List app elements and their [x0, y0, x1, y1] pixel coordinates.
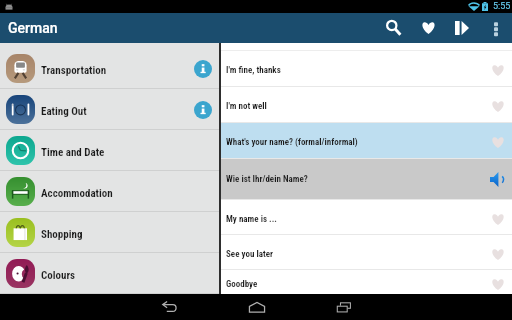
other: Favourite — [491, 214, 505, 225]
button[interactable]: Accommodation — [0, 171, 219, 211]
other: Favourite — [491, 137, 505, 148]
button[interactable]: Search — [377, 13, 411, 43]
button[interactable]: Flashcards — [445, 13, 479, 43]
staticText: Accommodation — [41, 187, 212, 200]
button[interactable]: My name is ... — [221, 200, 512, 234]
staticText: Goodbye — [226, 279, 491, 290]
button[interactable]: I'm fine, thanks — [221, 51, 512, 86]
staticText: Shopping — [41, 228, 212, 241]
button[interactable]: Back — [154, 294, 185, 320]
button[interactable]: Time and Date — [0, 130, 219, 170]
staticText: 5:55 — [493, 1, 511, 12]
staticText: Transportation — [41, 64, 194, 77]
button[interactable]: Recent apps — [328, 294, 359, 320]
button[interactable]: See you later — [221, 235, 512, 269]
staticText: Colours — [41, 269, 212, 282]
staticText: My name is ... — [226, 214, 491, 225]
button[interactable]: What's your name? (formal/informal) — [221, 123, 512, 158]
button[interactable]: I'm not well — [221, 87, 512, 122]
staticText: Eating Out — [41, 105, 194, 118]
other: Info — [194, 60, 212, 78]
button[interactable]: Transportation — [0, 48, 219, 88]
other: Favourite — [491, 249, 505, 260]
staticText: Time and Date — [41, 146, 212, 159]
staticText: I'm not well — [226, 101, 491, 112]
staticText: What's your name? (formal/informal) — [226, 137, 491, 148]
button[interactable]: Shopping — [0, 212, 219, 252]
button[interactable]: Colours — [0, 253, 219, 293]
other: Play audio — [490, 172, 505, 187]
button[interactable]: Favourites — [411, 13, 445, 43]
button[interactable]: More options — [479, 13, 512, 43]
staticText: Wie ist Ihr/dein Name? — [226, 174, 490, 185]
other: Info — [194, 101, 212, 119]
button[interactable]: Goodbye — [221, 270, 512, 294]
button[interactable]: Wie ist Ihr/dein Name? — [221, 159, 512, 199]
other: Favourite — [491, 65, 505, 76]
other: Favourite — [491, 101, 505, 112]
staticText: I'm fine, thanks — [226, 65, 491, 76]
button[interactable]: Eating Out — [0, 89, 219, 129]
staticText: German — [8, 20, 58, 36]
button[interactable]: Home — [241, 294, 272, 320]
other: Favourite — [491, 279, 505, 290]
staticText: See you later — [226, 249, 491, 260]
